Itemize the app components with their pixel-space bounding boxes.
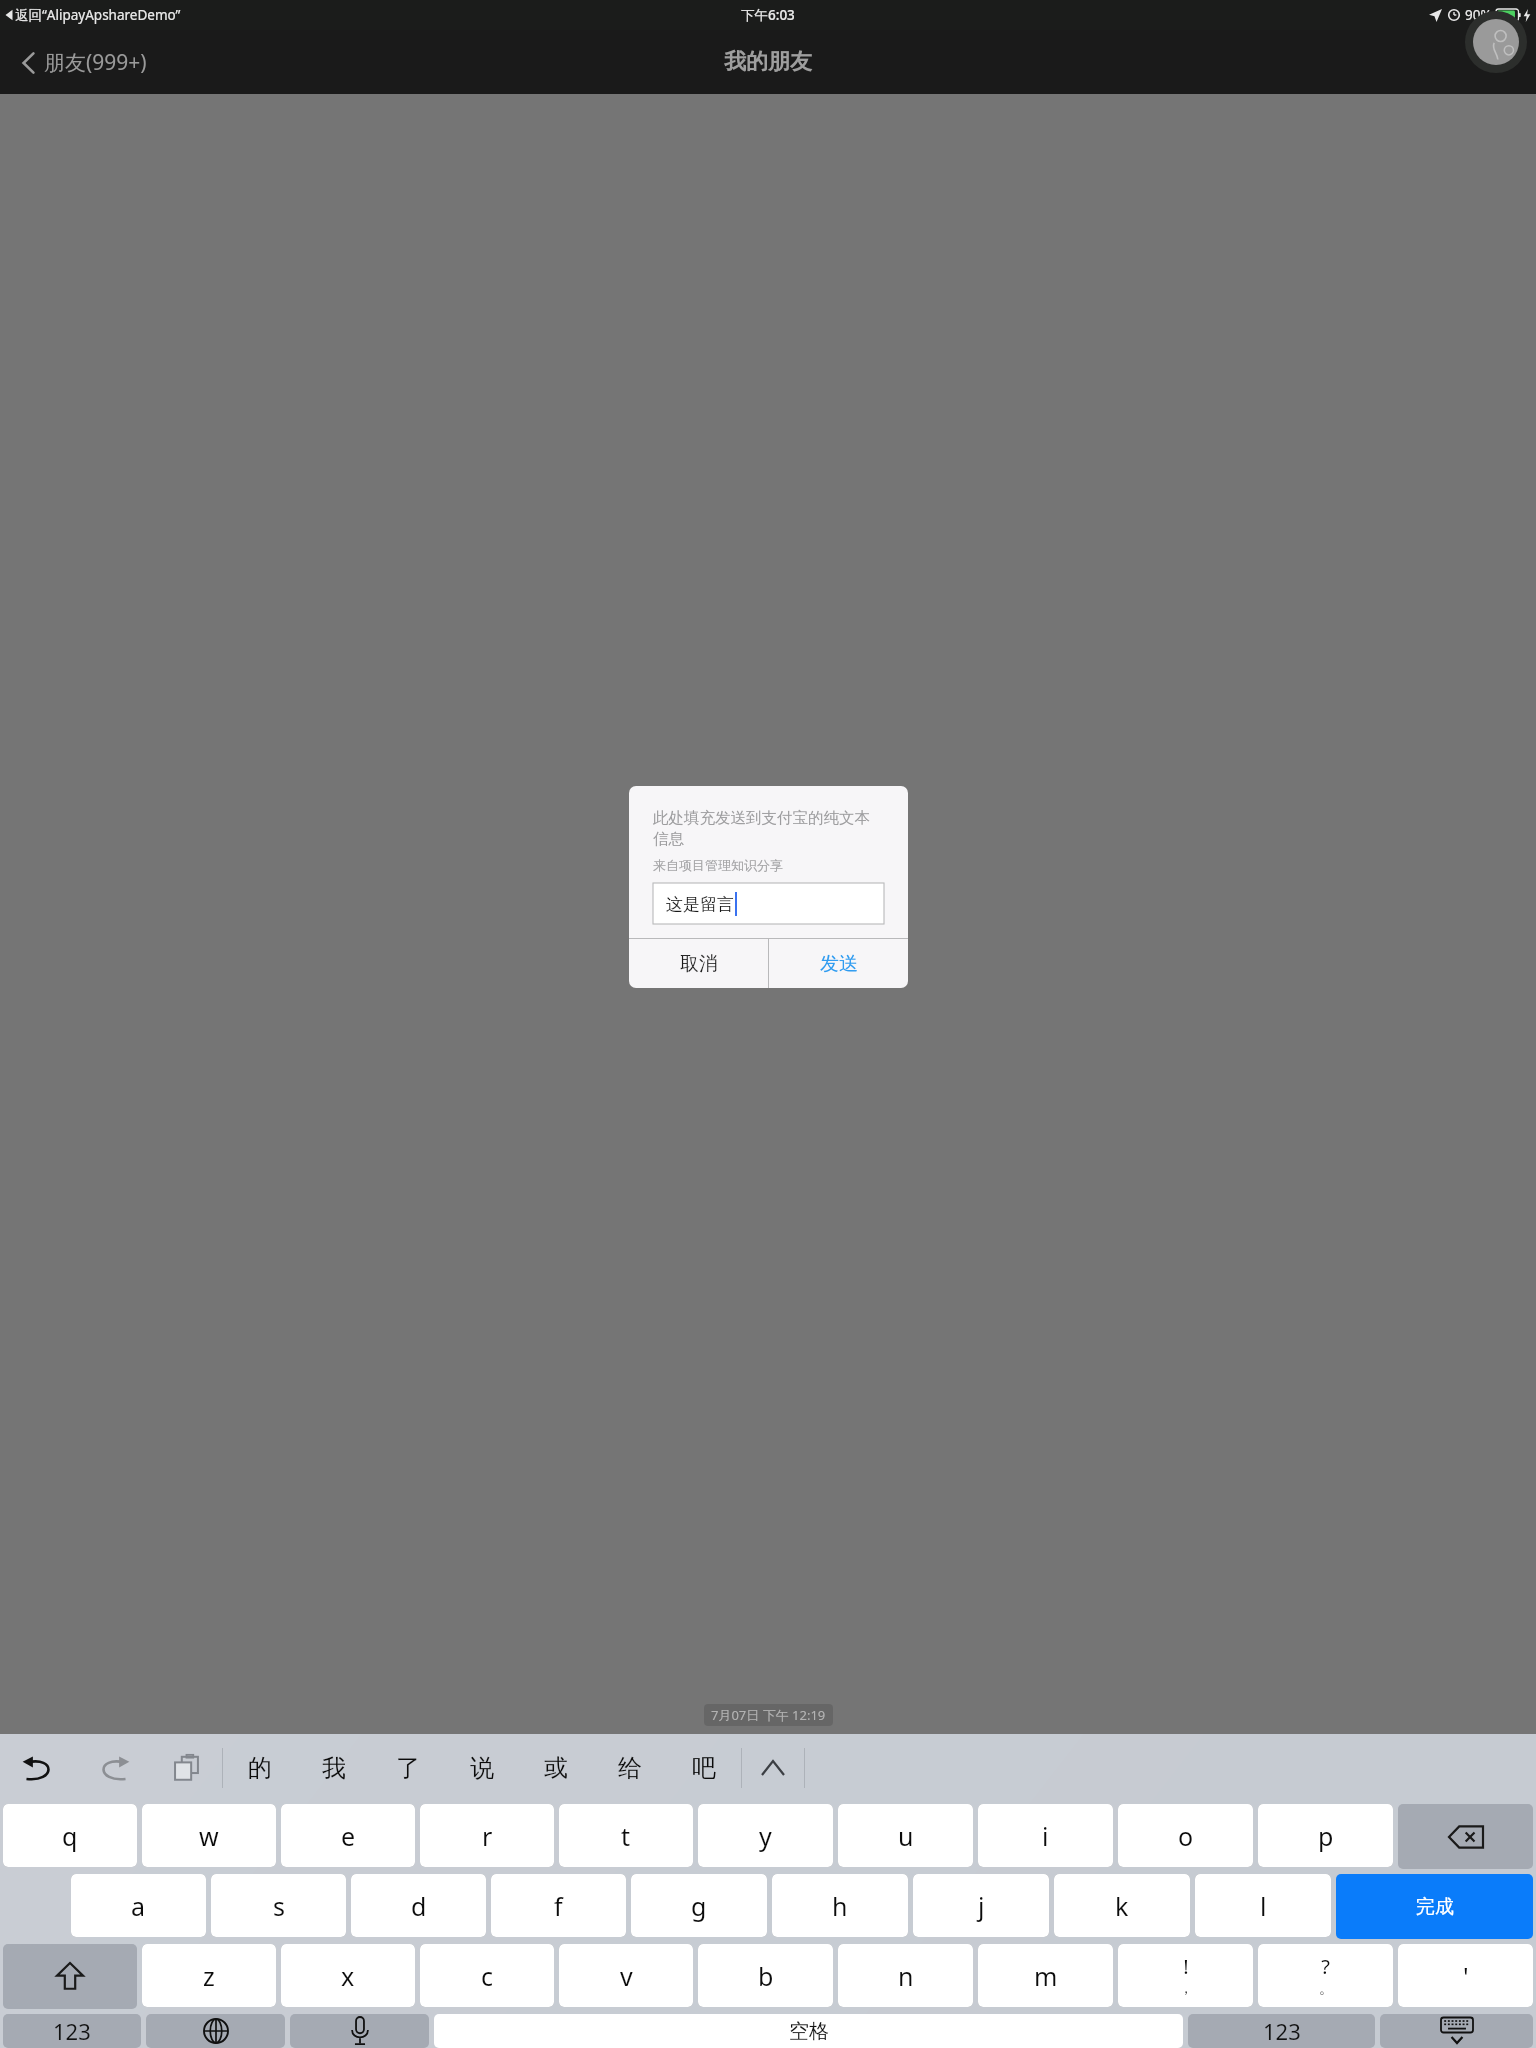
button[interactable]: k [1054, 1874, 1190, 1937]
button[interactable]: 完成 [1336, 1874, 1533, 1939]
button[interactable]: p [1258, 1804, 1393, 1867]
button[interactable]: 返回“AlipayApshareDemo” [4, 6, 181, 24]
button[interactable]: 或 [519, 1734, 593, 1802]
staticText: 下午6:03 [741, 6, 795, 24]
button[interactable]: 空格 [434, 2014, 1183, 2048]
staticText: 我 [322, 1753, 346, 1783]
button[interactable]: q [3, 1804, 137, 1867]
staticText: l [1260, 1889, 1267, 1923]
button[interactable]: ! [1118, 1944, 1253, 2007]
button[interactable]: 发送 [769, 939, 908, 988]
button[interactable]: Undo [0, 1734, 76, 1802]
button[interactable]: y [698, 1804, 833, 1867]
staticText: c [481, 1959, 494, 1993]
staticText: x [341, 1959, 355, 1993]
staticText: t [621, 1819, 631, 1853]
staticText: a [131, 1889, 146, 1923]
button[interactable]: x [281, 1944, 415, 2007]
staticText: b [758, 1959, 774, 1993]
staticText: u [898, 1819, 914, 1853]
button[interactable]: d [351, 1874, 486, 1937]
button[interactable]: Hide keyboard [1380, 2014, 1533, 2048]
button[interactable]: f [491, 1874, 626, 1937]
button[interactable]: b [698, 1944, 833, 2007]
staticText: j [978, 1889, 985, 1923]
button[interactable]: Profile [1465, 11, 1527, 73]
button[interactable]: Backspace [1398, 1804, 1533, 1869]
button[interactable]: g [631, 1874, 767, 1937]
button[interactable]: Dictation [290, 2014, 429, 2048]
staticText: ， [1179, 1980, 1193, 1998]
staticText: 这是留言 [666, 894, 734, 915]
staticText: 取消 [680, 952, 718, 976]
staticText: v [620, 1959, 633, 1993]
staticText: 90% [1465, 6, 1492, 24]
staticText: 来自项目管理知识分享 [653, 857, 783, 873]
button[interactable]: n [838, 1944, 973, 2007]
button[interactable]: 123 [3, 2014, 141, 2048]
staticText: 此处填充发送到支付宝的纯文本信息 [653, 808, 884, 848]
button[interactable]: m [978, 1944, 1113, 2007]
staticText: 我的朋友 [724, 48, 812, 76]
button[interactable]: u [838, 1804, 973, 1867]
button[interactable]: 吧 [667, 1734, 741, 1802]
staticText: s [273, 1889, 285, 1923]
staticText: 123 [1263, 2016, 1301, 2046]
button[interactable]: s [211, 1874, 346, 1937]
staticText: 空格 [789, 2019, 829, 2044]
button[interactable]: w [142, 1804, 276, 1867]
button[interactable]: 我 [297, 1734, 371, 1802]
button[interactable]: 取消 [629, 939, 768, 988]
staticText: o [1178, 1819, 1194, 1853]
button[interactable]: i [978, 1804, 1113, 1867]
staticText: g [691, 1889, 707, 1923]
staticText: 返回“AlipayApshareDemo” [15, 6, 181, 24]
staticText: m [1034, 1959, 1058, 1993]
staticText: ? [1321, 1953, 1330, 1980]
staticText: p [1318, 1819, 1334, 1853]
button[interactable]: h [772, 1874, 908, 1937]
staticText: 的 [248, 1753, 272, 1783]
button[interactable]: Shift [3, 1944, 137, 2009]
button[interactable]: a [71, 1874, 206, 1937]
button[interactable]: 朋友(999+) [18, 44, 151, 81]
staticText: w [199, 1819, 219, 1853]
staticText: 了 [396, 1753, 420, 1783]
button[interactable]: Redo [76, 1734, 152, 1802]
staticText: e [341, 1819, 356, 1853]
button[interactable]: ' [1398, 1944, 1533, 2007]
staticText: z [203, 1959, 215, 1993]
button[interactable]: t [559, 1804, 693, 1867]
button[interactable]: r [420, 1804, 554, 1867]
button[interactable]: v [559, 1944, 693, 2007]
staticText: 。 [1319, 1980, 1333, 1998]
button[interactable]: 这是留言 [653, 883, 884, 924]
staticText: f [554, 1889, 563, 1923]
button[interactable]: More suggestions [742, 1734, 804, 1802]
button[interactable]: 的 [223, 1734, 297, 1802]
staticText: 完成 [1416, 1895, 1454, 1919]
staticText: i [1042, 1819, 1049, 1853]
button[interactable]: 123 [1188, 2014, 1375, 2048]
staticText: n [898, 1959, 914, 1993]
button[interactable]: 给 [593, 1734, 667, 1802]
button[interactable]: c [420, 1944, 554, 2007]
staticText: q [62, 1819, 78, 1853]
staticText: 给 [618, 1753, 642, 1783]
staticText: 吧 [692, 1753, 716, 1783]
button[interactable]: Paste [152, 1734, 222, 1802]
staticText: r [482, 1819, 493, 1853]
button[interactable]: e [281, 1804, 415, 1867]
staticText: ' [1463, 1959, 1469, 1993]
button[interactable]: 了 [371, 1734, 445, 1802]
staticText: ! [1183, 1953, 1189, 1980]
button[interactable]: Switch language [146, 2014, 285, 2048]
button[interactable]: z [142, 1944, 276, 2007]
button[interactable]: l [1195, 1874, 1331, 1937]
button[interactable]: j [913, 1874, 1049, 1937]
button[interactable]: 说 [445, 1734, 519, 1802]
staticText: 123 [53, 2016, 91, 2046]
staticText: 朋友(999+) [44, 48, 147, 77]
button[interactable]: ? [1258, 1944, 1393, 2007]
button[interactable]: o [1118, 1804, 1253, 1867]
